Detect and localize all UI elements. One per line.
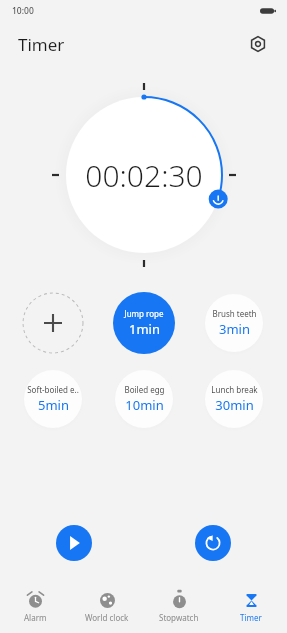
button[interactable]: World clock (71, 581, 143, 633)
button[interactable]: Brush teeth (205, 294, 263, 352)
staticText: 1min (129, 320, 160, 338)
staticText: 3min (219, 320, 250, 338)
button[interactable]: Jump rope (113, 292, 175, 354)
staticText: Stopwatch (159, 612, 199, 623)
button[interactable]: Alarm (0, 581, 71, 633)
staticText: 10:00 (12, 5, 34, 17)
staticText: Brush teeth (212, 308, 257, 319)
staticText: 10min (125, 396, 164, 414)
button[interactable]: Add timer preset (22, 292, 84, 354)
button[interactable]: Stopwatch (143, 581, 215, 633)
button[interactable]: Boiled egg (115, 370, 173, 428)
button[interactable]: Start (56, 525, 92, 561)
staticText: Jump rope (124, 308, 164, 319)
staticText: Boiled egg (124, 384, 165, 395)
staticText: Lunch break (211, 384, 258, 395)
staticText: 00:02:30 (85, 155, 203, 196)
staticText: Alarm (24, 612, 47, 623)
staticText: Soft-boiled e.. (27, 384, 79, 395)
staticText: Timer (18, 33, 65, 56)
button[interactable]: Soft-boiled e.. (24, 370, 82, 428)
staticText: World clock (85, 612, 129, 623)
button[interactable]: Reset (195, 525, 231, 561)
staticText: 5min (38, 396, 69, 414)
staticText: 30min (215, 396, 254, 414)
staticText: Timer (240, 612, 262, 623)
button[interactable]: Lunch break (205, 370, 263, 428)
button[interactable]: Timer (215, 581, 287, 633)
button[interactable]: Settings (243, 29, 273, 59)
